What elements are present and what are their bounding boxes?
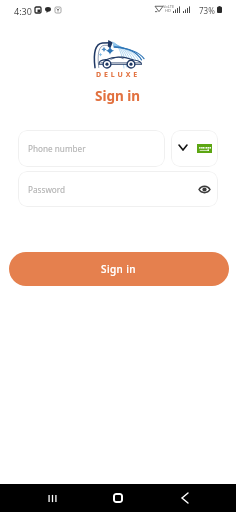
button[interactable]: Back: [171, 484, 199, 512]
button[interactable]: Select country code: [171, 130, 218, 167]
button[interactable]: Phone number: [18, 130, 165, 167]
button[interactable]: Recents: [38, 484, 66, 512]
staticText: Password: [28, 184, 66, 195]
staticText: Sign in: [95, 87, 141, 105]
staticText: 4:30: [14, 5, 32, 17]
button[interactable]: Password: [18, 171, 218, 207]
staticText: DELUXE: [96, 70, 141, 80]
staticText: VoLTE: [163, 4, 175, 9]
button[interactable]: Sign in: [9, 252, 229, 286]
staticText: 73%: [199, 5, 215, 16]
staticText: HD: [165, 8, 171, 13]
staticText: Phone number: [28, 143, 86, 154]
staticText: Sign in: [101, 262, 137, 276]
button[interactable]: Home: [104, 484, 132, 512]
button[interactable]: Show password: [191, 176, 217, 202]
